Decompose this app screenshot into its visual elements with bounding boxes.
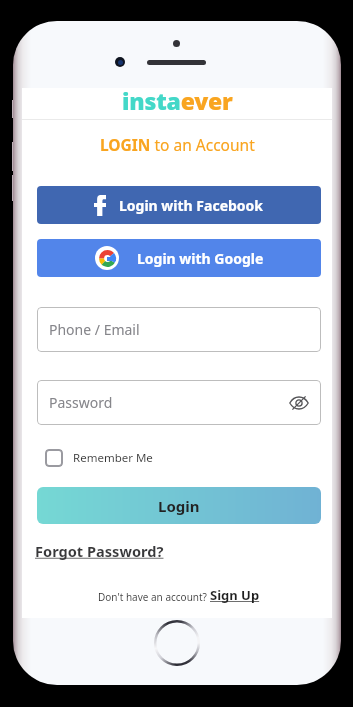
staticText: Phone / Email <box>49 320 140 339</box>
button[interactable]: Login with Google <box>37 239 321 277</box>
button[interactable]: Login <box>37 487 321 524</box>
staticText: Sign Up <box>210 586 260 604</box>
staticText: instaever <box>122 85 233 116</box>
staticText: LOGIN to an Account <box>100 134 255 155</box>
staticText: Password <box>49 393 113 412</box>
button[interactable]: Login with Facebook <box>37 186 321 224</box>
staticText: Login <box>158 496 200 516</box>
button[interactable]: Remember Me <box>45 449 153 467</box>
button[interactable]: Phone / Email <box>37 307 321 352</box>
button[interactable]: Home <box>154 620 200 666</box>
button[interactable]: Forgot Password? <box>35 541 164 561</box>
button[interactable]: Show password <box>287 391 311 415</box>
button[interactable]: Sign Up <box>210 586 260 604</box>
button[interactable]: Password <box>37 380 321 425</box>
staticText: Remember Me <box>73 450 153 466</box>
staticText: Forgot Password? <box>35 541 164 561</box>
staticText: Don't have an account? <box>98 590 210 604</box>
staticText: Login with Google <box>137 249 264 268</box>
staticText: Login with Facebook <box>119 196 264 215</box>
